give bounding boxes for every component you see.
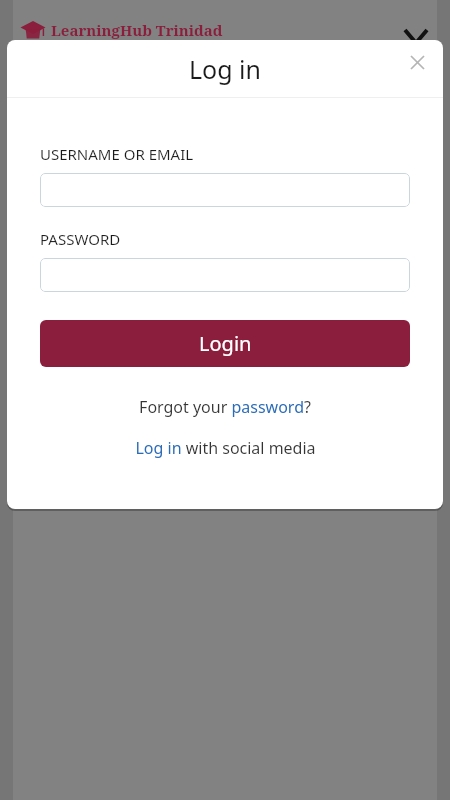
staticText: Log in with social media [135,437,316,459]
staticText: PASSWORD [40,229,121,249]
button[interactable]: Close [397,42,437,82]
button[interactable] [40,258,410,292]
staticText: Log in [189,52,262,86]
button[interactable]: Expand menu [394,14,438,58]
button[interactable]: Login [40,320,410,367]
staticText: Login [199,330,252,357]
staticText: USERNAME OR EMAIL [40,144,194,164]
button[interactable] [40,173,410,207]
staticText: LearningHub Trinidad [51,20,223,40]
staticText: Forgot your password? [139,396,311,418]
button[interactable]: LearningHub Trinidad [20,20,223,40]
button[interactable]: Forgot your password? [40,393,410,421]
button[interactable]: Log in with social media [40,434,410,462]
